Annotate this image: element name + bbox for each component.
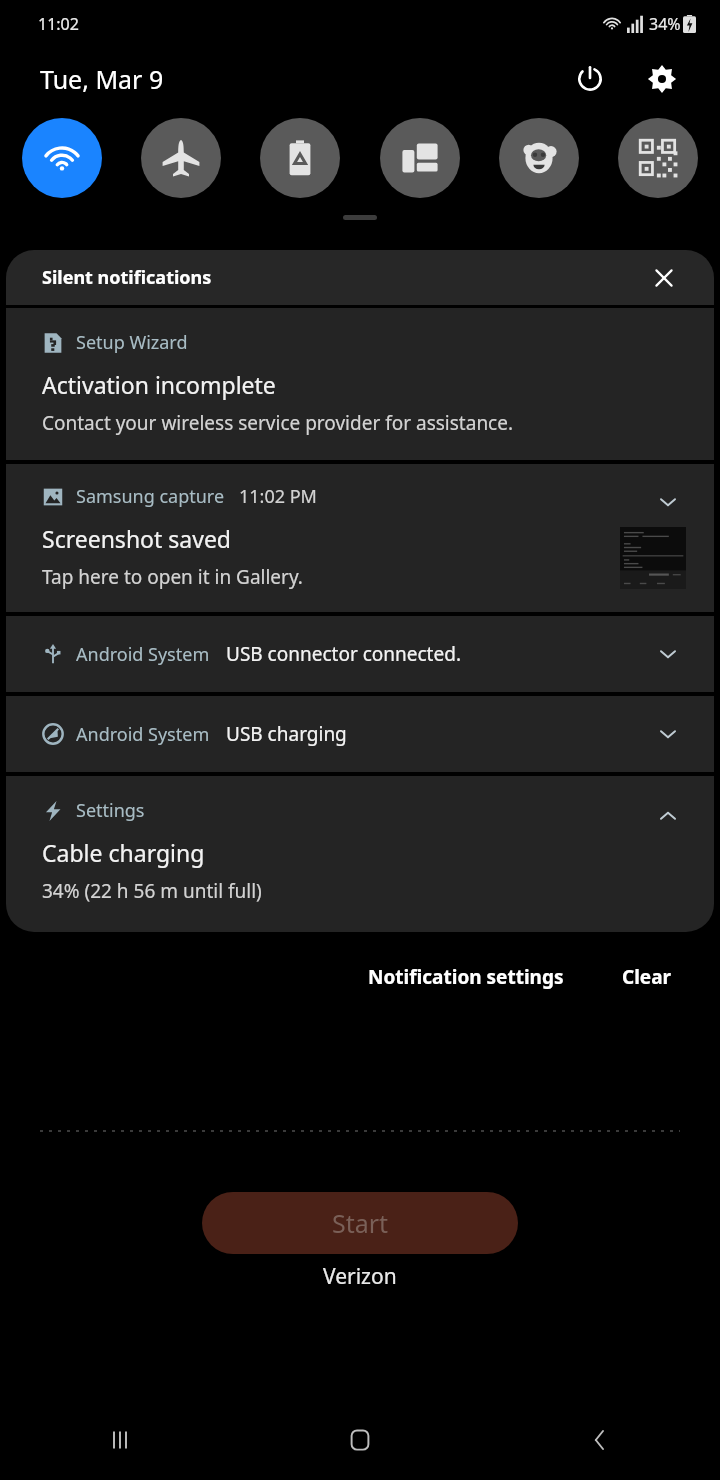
button[interactable]: Scan QR code	[618, 118, 698, 198]
button[interactable]: Clear	[606, 954, 688, 1000]
staticText: Activation incomplete	[42, 369, 276, 400]
button[interactable]: Recents	[0, 1400, 240, 1480]
staticText: Tue, Mar 9	[40, 62, 164, 96]
button[interactable]: Power	[566, 55, 614, 103]
staticText: Clear	[622, 964, 672, 990]
button[interactable]: Wi-Fi	[22, 118, 102, 198]
button[interactable]: Usb	[648, 634, 688, 674]
button[interactable]: Settings	[638, 55, 686, 103]
staticText: Start	[332, 1206, 389, 1240]
button[interactable]: AR Emoji	[499, 118, 579, 198]
staticText: 11:02 PM	[239, 484, 317, 509]
button[interactable]: Back	[480, 1400, 720, 1480]
button[interactable]: Android System	[6, 616, 714, 692]
button[interactable]: Collapse	[648, 796, 688, 836]
staticText: Silent notifications	[42, 265, 212, 290]
button[interactable]: Notification settings	[352, 954, 580, 1000]
button[interactable]: Samsung capture	[6, 464, 714, 612]
button[interactable]: Expand	[648, 482, 688, 522]
staticText: 11:02	[38, 13, 79, 35]
button[interactable]: Setup Wizard	[6, 308, 714, 460]
staticText: Screenshot saved	[42, 523, 232, 554]
staticText: Android System	[76, 722, 210, 747]
button[interactable]: Power saving	[260, 118, 340, 198]
staticText: Android System	[76, 642, 210, 667]
staticText: Verizon	[323, 1262, 397, 1291]
staticText: Samsung capture	[76, 484, 225, 509]
staticText: Cable charging	[42, 837, 205, 868]
button[interactable]: Start	[202, 1192, 518, 1254]
button[interactable]: Multi window	[380, 118, 460, 198]
staticText: USB connector connected.	[226, 641, 461, 667]
button[interactable]: Home	[240, 1400, 480, 1480]
button[interactable]: Android System	[6, 696, 714, 772]
staticText: USB charging	[226, 721, 347, 747]
staticText: Setup Wizard	[76, 330, 188, 355]
staticText: Contact your wireless service provider f…	[42, 410, 514, 436]
staticText: Settings	[76, 798, 145, 823]
staticText: 34% (22 h 56 m until full)	[42, 878, 262, 904]
staticText: 34%	[649, 13, 681, 35]
button[interactable]: Settings	[6, 776, 714, 932]
button[interactable]: Airplane mode	[141, 118, 221, 198]
staticText: Tap here to open it in Gallery.	[42, 564, 303, 590]
staticText: Notification settings	[368, 964, 564, 990]
button[interactable]: Dismiss silent notifications	[642, 256, 686, 300]
button[interactable]: UsbCharge	[648, 714, 688, 754]
